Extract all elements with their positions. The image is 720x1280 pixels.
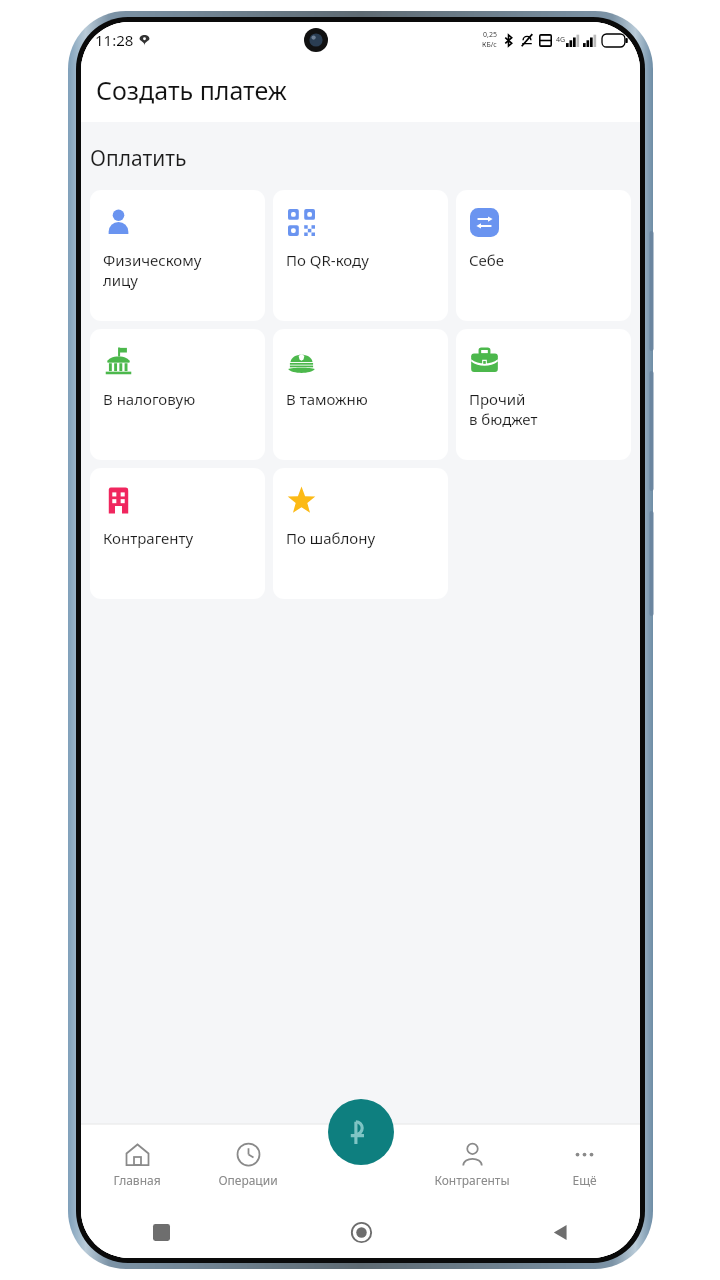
button[interactable]: Физическому — [90, 190, 265, 321]
staticText: В таможню — [286, 389, 368, 409]
button[interactable]: В таможню — [273, 329, 448, 460]
staticText: Операции — [218, 1172, 278, 1188]
staticText: Ещё — [572, 1172, 597, 1188]
button[interactable]: Recents — [141, 1212, 181, 1252]
button[interactable]: Контрагенту — [90, 468, 265, 599]
staticText: Себе — [469, 250, 505, 270]
staticText: Прочий — [469, 389, 526, 409]
staticText: 0,25 — [483, 30, 497, 40]
staticText: В налоговую — [103, 389, 196, 409]
button[interactable]: По QR-коду — [273, 190, 448, 321]
staticText: КБ/с — [482, 40, 497, 50]
button[interactable]: По шаблону — [273, 468, 448, 599]
staticText: в бюджет — [469, 409, 538, 429]
staticText: Контрагенты — [434, 1172, 510, 1188]
button[interactable]: Контрагенты — [416, 1124, 528, 1205]
button[interactable]: В налоговую — [90, 329, 265, 460]
button[interactable]: Создать платеж — [328, 1099, 394, 1165]
button[interactable]: Back — [540, 1212, 580, 1252]
button[interactable]: Главная — [81, 1124, 192, 1205]
staticText: лицу — [103, 270, 138, 290]
staticText: Физическому — [103, 250, 202, 270]
staticText: По QR-коду — [286, 250, 369, 270]
button[interactable]: Операции — [192, 1124, 304, 1205]
staticText: 11:28 — [95, 30, 134, 50]
staticText: 4G — [556, 35, 566, 45]
staticText: Создать платеж — [96, 73, 287, 107]
button[interactable]: Прочий — [456, 329, 631, 460]
staticText: По шаблону — [286, 528, 376, 548]
button[interactable]: Ещё — [528, 1124, 640, 1205]
staticText: Оплатить — [90, 144, 187, 173]
button[interactable]: Home — [341, 1212, 381, 1252]
button[interactable]: Себе — [456, 190, 631, 321]
staticText: Контрагенту — [103, 528, 194, 548]
staticText: Главная — [113, 1172, 161, 1188]
